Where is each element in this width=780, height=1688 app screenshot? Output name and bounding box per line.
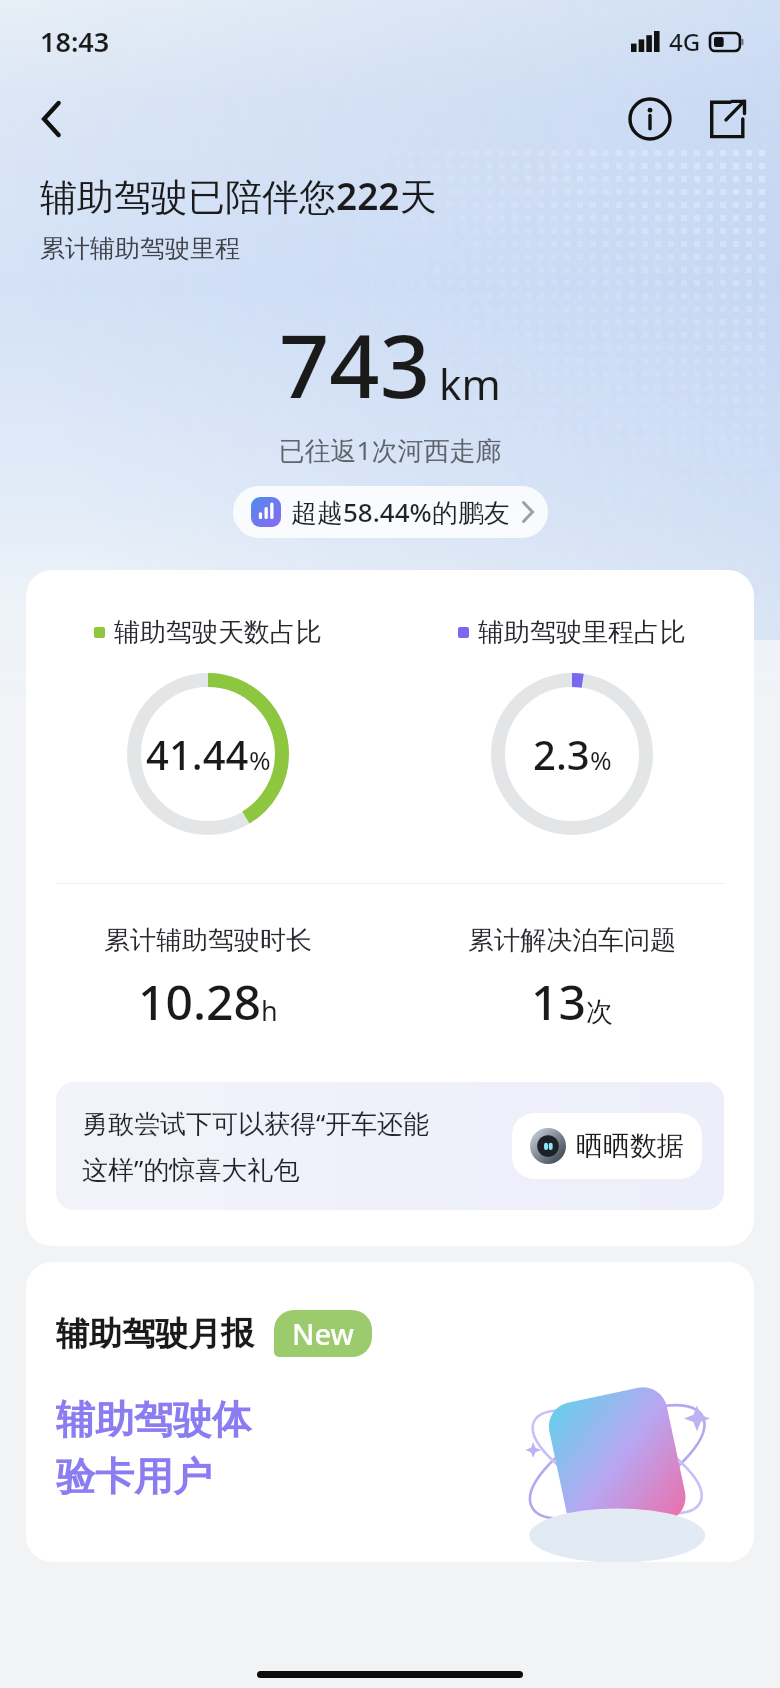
button[interactable]: Info	[620, 89, 680, 149]
button[interactable]: Share	[696, 89, 756, 149]
button[interactable]: 超越58.44%的鹏友	[233, 486, 548, 538]
staticText: 这样”的惊喜大礼包	[82, 1151, 300, 1187]
staticText: 累计辅助驾驶里程	[40, 233, 240, 264]
staticText: 辅助驾驶里程占比	[478, 616, 686, 649]
staticText: 41.44	[146, 727, 249, 781]
staticText: h	[261, 992, 278, 1029]
staticText: 辅助驾驶已陪伴您222天	[40, 170, 437, 221]
staticText: 2.3	[533, 727, 590, 781]
staticText: 已往返1次河西走廊	[0, 432, 780, 468]
staticText: 累计辅助驾驶时长	[104, 924, 312, 957]
staticText: New	[292, 1314, 354, 1353]
staticText: 18:43	[40, 23, 110, 60]
staticText: 4G	[669, 25, 701, 58]
staticText: 次	[586, 995, 613, 1029]
staticText: 辅助驾驶天数占比	[114, 616, 322, 649]
staticText: 超越58.44%的鹏友	[291, 494, 510, 530]
staticText: 743	[279, 304, 431, 424]
button[interactable]: 辅助驾驶月报	[26, 1262, 754, 1562]
staticText: %	[590, 742, 612, 777]
staticText: 验卡用户	[56, 1452, 212, 1501]
staticText: 晒晒数据	[576, 1129, 684, 1163]
button[interactable]: 晒晒数据	[512, 1113, 702, 1179]
staticText: 辅助驾驶月报	[56, 1313, 254, 1355]
staticText: km	[439, 355, 501, 412]
staticText: 13	[531, 969, 586, 1034]
staticText: 累计解决泊车问题	[468, 924, 676, 957]
staticText: %	[249, 742, 271, 777]
button[interactable]: Back	[22, 89, 82, 149]
staticText: 勇敢尝试下可以获得“开车还能	[82, 1105, 430, 1141]
staticText: 10.28	[138, 969, 261, 1034]
staticText: 辅助驾驶体	[56, 1395, 251, 1444]
